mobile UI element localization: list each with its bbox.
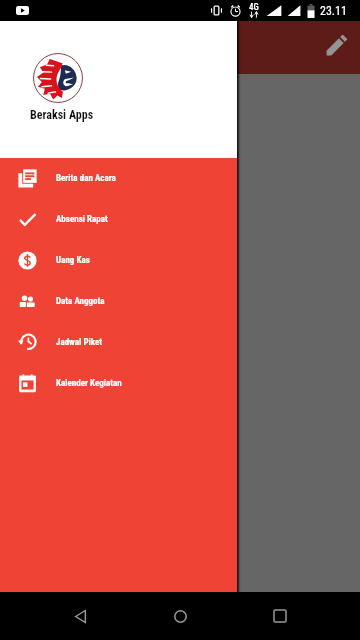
staticText: Data Anggota	[56, 296, 105, 307]
staticText: 23.11	[320, 4, 347, 18]
staticText: Berita dan Acara	[56, 173, 116, 184]
button[interactable]: Back	[56, 592, 104, 640]
button[interactable]: Recents	[256, 592, 304, 640]
staticText: 4G	[249, 2, 259, 13]
button[interactable]: Absensi Rapat	[0, 199, 237, 240]
button[interactable]: Jadwal Piket	[0, 322, 237, 363]
button[interactable]: Kalender Kegiatan	[0, 363, 237, 404]
staticText: Absensi Rapat	[56, 214, 108, 225]
staticText: Kalender Kegiatan	[56, 378, 122, 389]
button[interactable]: Data Anggota	[0, 281, 237, 322]
staticText: Jadwal Piket	[56, 337, 103, 348]
button[interactable]: Berita dan Acara	[0, 158, 237, 199]
staticText: Uang Kas	[56, 255, 90, 266]
button[interactable]: Edit	[317, 25, 357, 65]
button[interactable]: Uang Kas	[0, 240, 237, 281]
staticText: Beraksi Apps	[30, 108, 94, 122]
button[interactable]: Home	[156, 592, 204, 640]
